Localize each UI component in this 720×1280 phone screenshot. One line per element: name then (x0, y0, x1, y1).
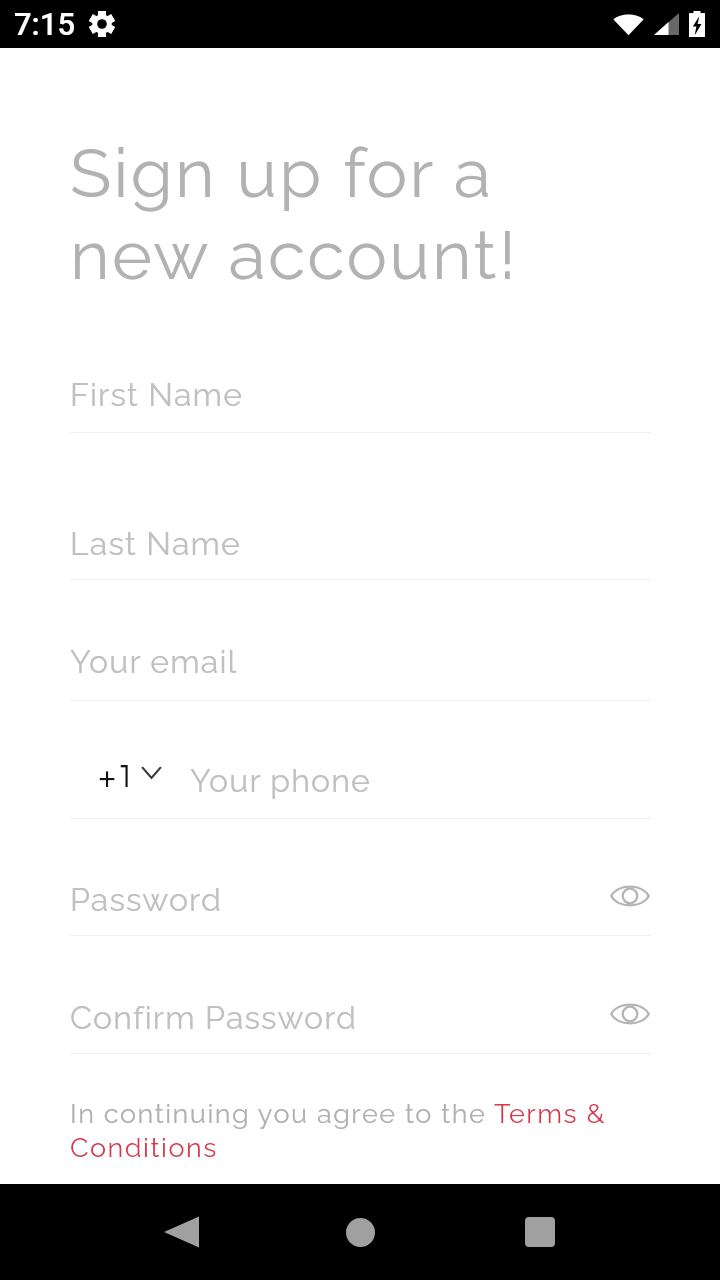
button[interactable]: Sign up for a new account! (70, 131, 630, 295)
button[interactable]: In continuing you agree to the Terms & C… (70, 1096, 615, 1164)
staticText: Confirm Password (70, 996, 358, 1038)
staticText: Last Name (70, 522, 241, 564)
button[interactable] (186, 752, 651, 818)
button[interactable]: Show password (601, 867, 659, 925)
staticText: First Name (70, 373, 244, 415)
staticText: In continuing you agree to the Terms & C… (70, 1096, 615, 1164)
button[interactable] (70, 513, 651, 579)
staticText: Password (70, 878, 223, 920)
button[interactable] (70, 987, 590, 1053)
staticText: Your email (70, 640, 238, 682)
staticText: Your phone (190, 759, 371, 801)
button[interactable]: Settings (89, 11, 115, 37)
button[interactable]: Back (132, 1184, 228, 1280)
button[interactable] (70, 869, 590, 935)
button[interactable]: Recents (492, 1184, 588, 1280)
button[interactable] (70, 634, 651, 700)
staticText: 7:15 (14, 6, 76, 42)
button[interactable]: Home (312, 1184, 408, 1280)
staticText: +1 (98, 754, 135, 795)
button[interactable]: Show password (601, 985, 659, 1043)
button[interactable] (70, 366, 651, 432)
staticText: Sign up for a new account! (70, 131, 519, 295)
button[interactable]: Country code, +1 (88, 756, 178, 814)
